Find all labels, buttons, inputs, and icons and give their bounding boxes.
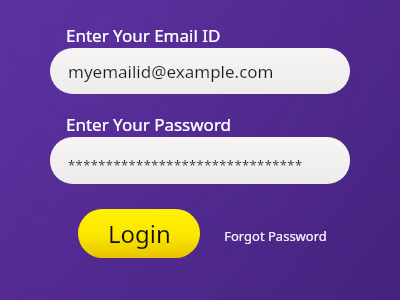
button[interactable]: Login <box>78 209 200 258</box>
staticText: Login <box>108 217 171 250</box>
staticText: Enter Your Password <box>66 113 232 136</box>
staticText: Enter Your Email ID <box>66 24 221 47</box>
staticText: myemailid@example.com <box>68 60 274 83</box>
staticText: Forgot Password <box>224 227 327 245</box>
button[interactable]: myemailid@example.com <box>50 48 350 94</box>
button[interactable]: ******************************* <box>50 137 350 184</box>
button[interactable]: Forgot Password <box>216 224 334 248</box>
staticText: ******************************* <box>68 156 303 174</box>
